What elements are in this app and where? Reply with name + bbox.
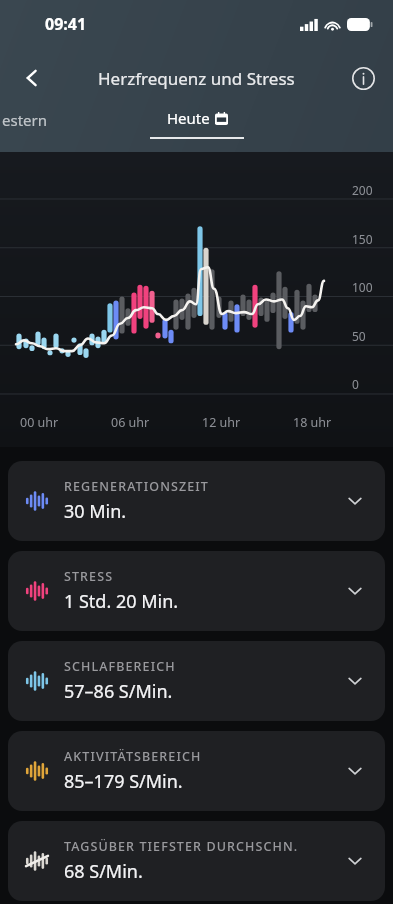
- staticText: 85–179 S/Min.: [64, 769, 183, 794]
- staticText: 200: [352, 182, 373, 198]
- button[interactable]: STRESS: [8, 551, 385, 631]
- button[interactable]: REGENERATIONSZEIT: [8, 461, 385, 541]
- staticText: 30 Min.: [64, 499, 127, 524]
- staticText: 50: [352, 328, 366, 344]
- staticText: STRESS: [64, 568, 114, 585]
- staticText: 150: [352, 231, 373, 247]
- button[interactable]: Expand: [337, 843, 373, 879]
- staticText: 09:41: [45, 13, 87, 35]
- staticText: Herzfrequenz und Stress: [98, 67, 295, 90]
- staticText: SCHLAFBEREICH: [64, 658, 176, 675]
- staticText: 00 uhr: [20, 414, 111, 431]
- staticText: 06 uhr: [111, 414, 202, 431]
- staticText: TAGSÜBER TIEFSTER DURCHSCHN.: [64, 838, 299, 855]
- button[interactable]: AKTIVITÄTSBEREICH: [8, 731, 385, 811]
- staticText: 1 Std. 20 Min.: [64, 589, 179, 614]
- staticText: 57–86 S/Min.: [64, 679, 173, 704]
- staticText: 12 uhr: [202, 414, 293, 431]
- staticText: 68 S/Min.: [64, 859, 143, 884]
- button[interactable]: Expand: [337, 483, 373, 519]
- staticText: 100: [352, 279, 373, 295]
- button[interactable]: SCHLAFBEREICH: [8, 641, 385, 721]
- button[interactable]: Expand: [337, 573, 373, 609]
- button[interactable]: estern: [2, 110, 47, 130]
- button[interactable]: Expand: [337, 753, 373, 789]
- staticText: 18 uhr: [293, 414, 384, 431]
- button[interactable]: Heute: [150, 102, 244, 139]
- button[interactable]: Expand: [337, 663, 373, 699]
- staticText: AKTIVITÄTSBEREICH: [64, 748, 202, 765]
- staticText: REGENERATIONSZEIT: [64, 478, 209, 495]
- button[interactable]: Info: [343, 58, 383, 98]
- staticText: Heute: [167, 108, 210, 128]
- button[interactable]: Back: [10, 56, 54, 100]
- button[interactable]: TAGSÜBER TIEFSTER DURCHSCHN.: [8, 821, 385, 901]
- staticText: 0: [352, 376, 359, 392]
